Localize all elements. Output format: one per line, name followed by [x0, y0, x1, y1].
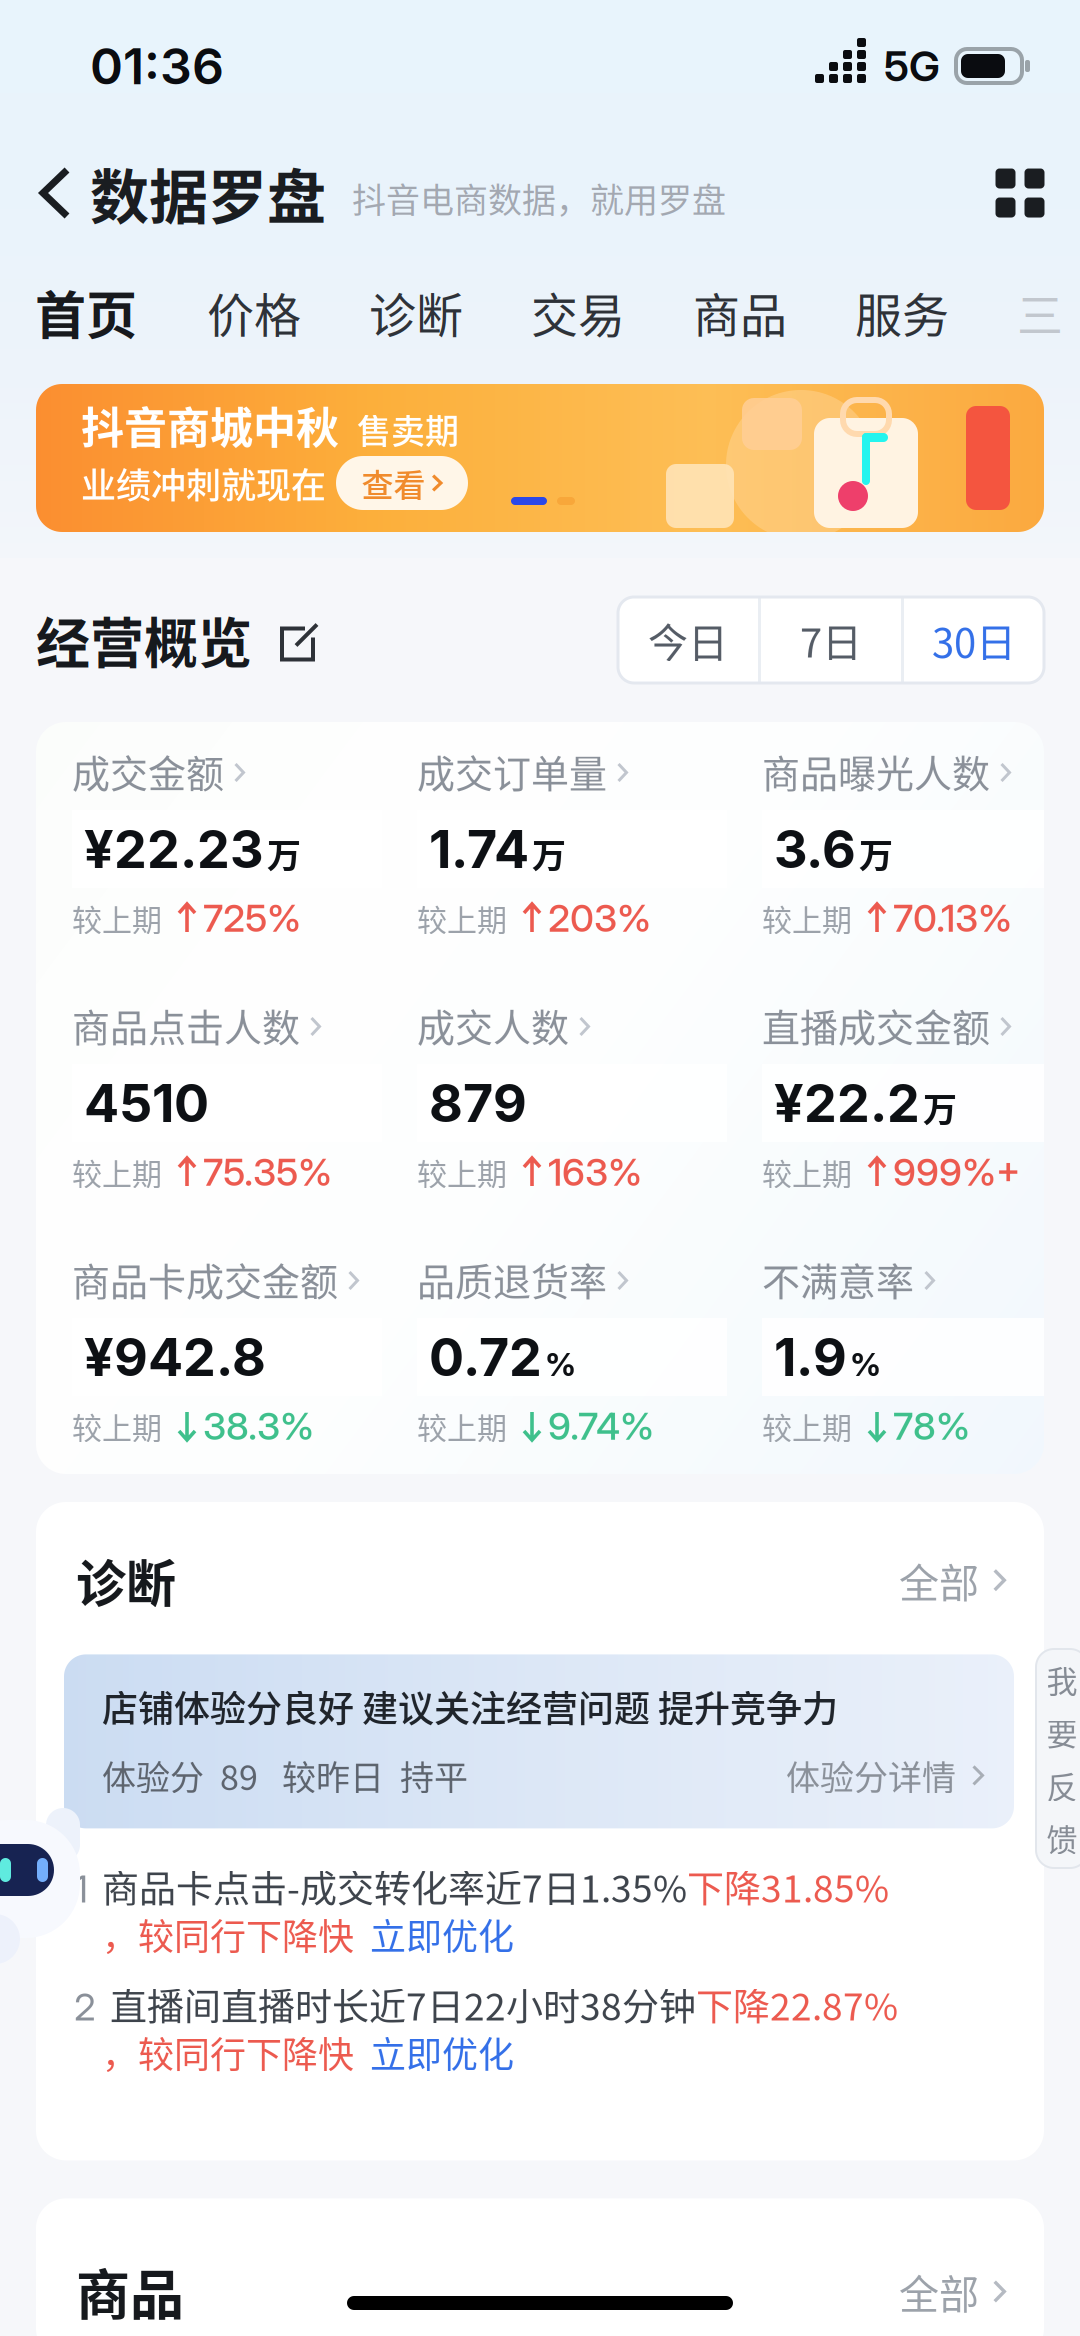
- staticText: 全部: [899, 1551, 979, 1609]
- staticText: 品质退货率: [417, 1251, 607, 1306]
- button[interactable]: 成交订单量: [417, 748, 727, 938]
- staticText: 商品点击人数: [72, 997, 300, 1052]
- staticText: 业绩冲刺就现在: [81, 458, 326, 508]
- staticText: 经营概览: [36, 601, 252, 679]
- staticText: 成交金额: [72, 743, 224, 798]
- staticText: 数据罗盘: [90, 150, 326, 236]
- staticText: 直播间直播时长近7日22小时38分钟: [110, 1978, 696, 2031]
- staticText: 163%: [548, 1149, 642, 1195]
- staticText: 725%: [203, 895, 301, 941]
- button[interactable]: 全部: [899, 2262, 1006, 2320]
- staticText: ，较同行下降快: [102, 1908, 354, 1960]
- staticText: %: [850, 1345, 881, 1384]
- button[interactable]: 直播成交金额: [762, 1002, 1072, 1192]
- staticText: 较上期: [762, 1150, 852, 1194]
- button[interactable]: 应用菜单: [982, 153, 1058, 233]
- staticText: 立即优化: [370, 2026, 514, 2078]
- staticText: 全部: [899, 2262, 979, 2320]
- button[interactable]: 7日: [761, 597, 901, 683]
- button[interactable]: 商品卡成交金额: [72, 1256, 382, 1446]
- staticText: 万: [532, 828, 566, 878]
- staticText: 较上期: [72, 1150, 162, 1194]
- staticText: 首页: [35, 275, 137, 349]
- staticText: 较上期: [417, 1150, 507, 1194]
- staticText: 商品卡成交金额: [72, 1251, 338, 1306]
- staticText: 较上期: [762, 1404, 852, 1448]
- button[interactable]: 30日: [904, 597, 1044, 683]
- staticText: 立即优化: [370, 1908, 514, 1960]
- staticText: 万: [859, 828, 893, 878]
- staticText: 0.72: [429, 1325, 542, 1388]
- button[interactable]: 服务: [855, 264, 1017, 360]
- button[interactable]: 全部: [899, 1551, 1006, 1609]
- staticText: 7日: [800, 611, 862, 669]
- staticText: ¥22.2: [774, 1071, 920, 1134]
- staticText: 下降22.87%: [696, 1978, 898, 2031]
- staticText: 三: [1017, 279, 1063, 345]
- staticText: 较上期: [72, 1404, 162, 1448]
- staticText: 诊断: [369, 278, 463, 346]
- staticText: 馈: [1046, 1815, 1077, 1860]
- staticText: ¥22.23: [84, 817, 264, 880]
- staticText: 1.9: [774, 1325, 847, 1388]
- button[interactable]: 商品点击人数: [72, 1002, 382, 1192]
- staticText: 879: [429, 1071, 527, 1134]
- staticText: ，较同行下降快: [102, 2026, 354, 2078]
- staticText: 直播成交金额: [762, 997, 990, 1052]
- staticText: 抖音电商数据，就用罗盘: [352, 173, 726, 223]
- staticText: 较上期: [417, 896, 507, 940]
- button[interactable]: 我要反馈: [1036, 1649, 1080, 1868]
- staticText: 不满意率: [762, 1251, 914, 1306]
- staticText: 较上期: [72, 896, 162, 940]
- button[interactable]: 品质退货率: [417, 1256, 727, 1446]
- button[interactable]: 成交金额: [72, 748, 382, 938]
- staticText: 999%+: [893, 1149, 1020, 1195]
- button[interactable]: 交易: [531, 264, 693, 360]
- button[interactable]: 编辑指标: [252, 615, 321, 664]
- staticText: 服务: [855, 278, 949, 346]
- button[interactable]: 1: [74, 1862, 1008, 1958]
- staticText: 我: [1046, 1657, 1077, 1702]
- staticText: 75.35%: [203, 1149, 332, 1195]
- button[interactable]: 价格: [207, 264, 369, 360]
- staticText: 要: [1046, 1710, 1077, 1754]
- button[interactable]: 2: [74, 1980, 1008, 2076]
- staticText: 抖音商城中秋: [81, 394, 339, 456]
- staticText: 体验分详情: [786, 1751, 956, 1800]
- staticText: 售卖期: [357, 404, 459, 453]
- button[interactable]: 返回: [26, 153, 84, 233]
- staticText: 商品: [76, 2252, 184, 2331]
- staticText: 体验分 89 较昨日 持平: [102, 1751, 468, 1800]
- button[interactable]: 商品曝光人数: [762, 748, 1072, 938]
- staticText: 70.13%: [893, 895, 1012, 941]
- button[interactable]: 商品: [693, 264, 855, 360]
- button[interactable]: 今日: [618, 597, 758, 683]
- staticText: %: [545, 1345, 576, 1384]
- staticText: 1.74: [429, 817, 529, 880]
- staticText: 今日: [648, 611, 728, 669]
- button[interactable]: 成交人数: [417, 1002, 727, 1192]
- staticText: 交易: [531, 278, 625, 346]
- staticText: ¥942.8: [84, 1325, 266, 1388]
- staticText: 反: [1046, 1762, 1077, 1807]
- staticText: 万: [923, 1082, 957, 1132]
- staticText: 成交人数: [417, 997, 569, 1052]
- button[interactable]: 抖音商城中秋: [36, 384, 1044, 532]
- staticText: 成交订单量: [417, 743, 607, 798]
- staticText: 商品: [693, 278, 787, 346]
- staticText: 01:36: [90, 36, 224, 96]
- staticText: 店铺体验分良好 建议关注经营问题 提升竞争力: [102, 1680, 838, 1732]
- button[interactable]: 不满意率: [762, 1256, 1072, 1446]
- staticText: 查看: [361, 460, 425, 506]
- staticText: 9.74%: [548, 1403, 654, 1449]
- staticText: 较上期: [762, 896, 852, 940]
- staticText: 价格: [207, 278, 301, 346]
- staticText: 78%: [893, 1403, 970, 1449]
- button[interactable]: 首页: [35, 264, 207, 360]
- button[interactable]: 店铺体验分良好 建议关注经营问题 提升竞争力: [64, 1654, 1014, 1828]
- staticText: 3.6: [774, 817, 856, 880]
- button[interactable]: 诊断: [369, 264, 531, 360]
- staticText: 较上期: [417, 1404, 507, 1448]
- staticText: 1: [74, 1866, 88, 1912]
- staticText: 商品卡点击-成交转化率近7日1.35%: [102, 1860, 687, 1913]
